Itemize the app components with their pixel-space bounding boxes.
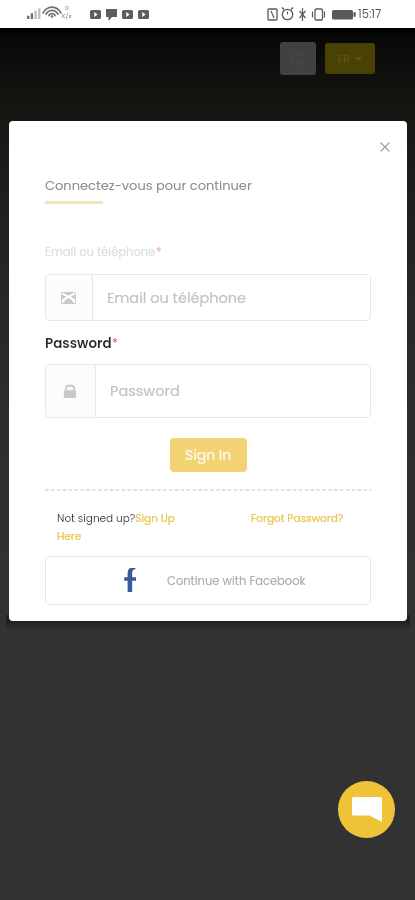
staticText: Connectez-vous pour continuer: [45, 176, 252, 194]
staticText: Email ou téléphone: [45, 244, 156, 260]
staticText: *: [156, 244, 162, 260]
button[interactable]: Email ou téléphone: [45, 274, 371, 321]
staticText: *: [112, 334, 118, 351]
staticText: Sign In: [185, 445, 232, 465]
staticText: K/s: [62, 12, 72, 20]
button[interactable]: Not signed up?Sign Up Here: [57, 511, 190, 544]
button[interactable]: Chat: [338, 781, 395, 838]
button[interactable]: Sign In: [170, 438, 247, 472]
button[interactable]: Continue with Facebook: [45, 556, 371, 605]
staticText: Password: [45, 334, 112, 353]
staticText: FR: [338, 51, 351, 66]
staticText: 0: [65, 4, 69, 12]
staticText: 15:17: [358, 6, 382, 22]
button[interactable]: Forgot Password?: [251, 511, 344, 526]
staticText: Password: [110, 381, 180, 401]
button[interactable]: Password: [45, 364, 371, 418]
button[interactable]: FR: [325, 43, 375, 74]
button[interactable]: Search: [280, 42, 316, 75]
staticText: Email ou téléphone: [107, 288, 247, 308]
staticText: Continue with Facebook: [167, 573, 306, 589]
button[interactable]: Close: [375, 137, 395, 157]
